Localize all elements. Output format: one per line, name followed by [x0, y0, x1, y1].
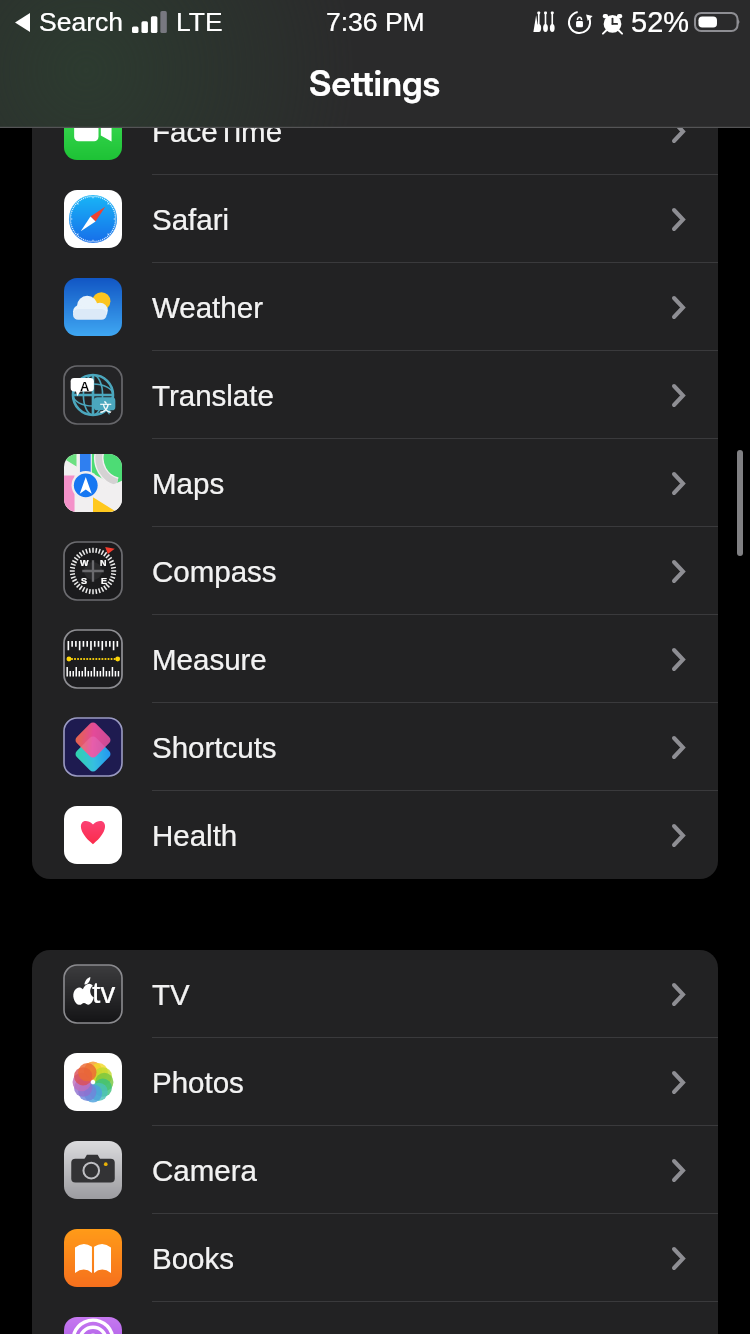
staticText: Camera	[152, 1154, 672, 1187]
staticText: Weather	[152, 291, 672, 324]
button[interactable]: Maps	[32, 439, 718, 527]
button[interactable]: FaceTime	[32, 87, 718, 175]
button[interactable]: tv	[32, 950, 718, 1038]
staticText: S	[81, 576, 88, 586]
staticText: Compass	[152, 555, 672, 588]
button[interactable]: A	[32, 351, 718, 439]
staticText: 文	[100, 399, 112, 414]
button[interactable]: Shortcuts	[32, 703, 718, 791]
staticText: tv	[92, 976, 116, 1010]
button[interactable]: Camera	[32, 1126, 718, 1214]
staticText: FaceTime	[152, 115, 672, 148]
staticText: Maps	[152, 467, 672, 500]
staticText: A	[80, 379, 90, 394]
staticText: Health	[152, 819, 672, 852]
staticText: E	[101, 576, 108, 586]
staticText: N	[100, 558, 107, 568]
staticText: Safari	[152, 203, 672, 236]
staticText: Settings	[309, 62, 441, 104]
staticText: Translate	[152, 379, 672, 412]
button[interactable]: Podcasts	[32, 1302, 718, 1334]
button[interactable]: Health	[32, 791, 718, 879]
button[interactable]: Weather	[32, 263, 718, 351]
staticText: 7:36 PM	[326, 7, 425, 37]
staticText: Search	[39, 7, 123, 37]
button[interactable]: Safari	[32, 175, 718, 263]
button[interactable]: Photos	[32, 1038, 718, 1126]
staticText: W	[80, 558, 89, 568]
staticText: LTE	[176, 7, 223, 37]
staticText: Books	[152, 1242, 672, 1275]
staticText: Shortcuts	[152, 731, 672, 764]
button[interactable]: Measure	[32, 615, 718, 703]
staticText: Photos	[152, 1066, 672, 1099]
staticText: 52%	[631, 6, 690, 38]
staticText: Measure	[152, 643, 672, 676]
button[interactable]: Books	[32, 1214, 718, 1302]
staticText: TV	[152, 978, 672, 1011]
button[interactable]: W	[32, 527, 718, 615]
